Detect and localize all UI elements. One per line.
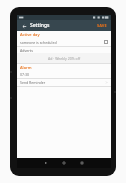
staticText: Settings <box>30 22 50 29</box>
staticText: Ad · Weekly 20% off <box>48 56 81 61</box>
button[interactable]: Back <box>42 159 50 167</box>
button[interactable]: Back <box>20 22 28 30</box>
button[interactable]: Home <box>60 159 68 167</box>
button[interactable]: someone is scheduled <box>17 38 111 46</box>
button[interactable]: SAVE <box>96 23 108 28</box>
button[interactable]: 07:30 <box>17 71 111 78</box>
staticText: Adverts <box>20 48 33 53</box>
button[interactable]: Recents <box>78 159 86 167</box>
staticText: Alarm <box>20 65 32 70</box>
button[interactable]: Send Reminder <box>17 79 111 86</box>
staticText: SAVE <box>97 23 107 28</box>
staticText: Active day <box>20 32 40 37</box>
staticText: 07:30 <box>20 72 29 77</box>
staticText: someone is scheduled <box>20 40 57 45</box>
staticText: Send Reminder <box>20 80 46 85</box>
